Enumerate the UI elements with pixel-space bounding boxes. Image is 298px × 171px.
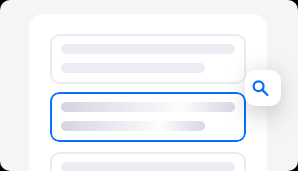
button[interactable] <box>50 152 246 171</box>
button[interactable] <box>50 92 246 142</box>
button[interactable] <box>50 34 246 84</box>
button[interactable]: Search <box>245 70 281 106</box>
